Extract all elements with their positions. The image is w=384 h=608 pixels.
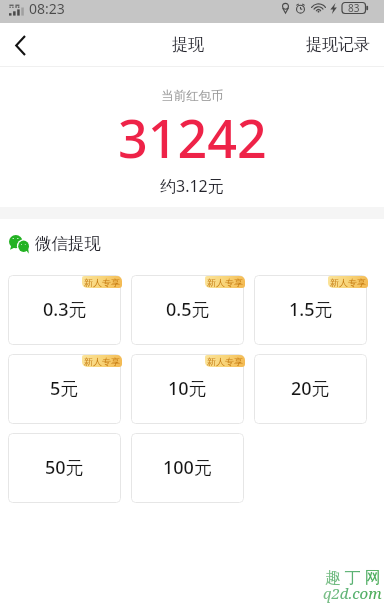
- staticText: 趣丁网: [325, 568, 384, 588]
- button[interactable]: 1.5元: [254, 275, 367, 345]
- staticText: 100元: [163, 455, 212, 480]
- button[interactable]: 0.3元: [8, 275, 121, 345]
- staticText: 31242: [118, 102, 267, 173]
- button[interactable]: Back: [0, 23, 40, 67]
- staticText: 新人专享: [207, 277, 243, 288]
- staticText: 1.5元: [289, 297, 333, 322]
- staticText: 微信提现: [35, 233, 101, 254]
- button[interactable]: 5元: [8, 354, 121, 424]
- button[interactable]: 0.5元: [131, 275, 244, 345]
- staticText: 新人专享: [207, 356, 243, 367]
- button[interactable]: 20元: [254, 354, 367, 424]
- staticText: 新人专享: [84, 356, 120, 367]
- staticText: 新人专享: [84, 277, 120, 288]
- staticText: 提现: [172, 35, 204, 55]
- staticText: 约3.12元: [160, 175, 224, 197]
- staticText: q2d.com: [323, 583, 382, 603]
- staticText: 50元: [45, 455, 84, 480]
- staticText: 10元: [168, 376, 207, 401]
- staticText: 当前红包币: [161, 88, 224, 104]
- staticText: 新人专享: [330, 277, 366, 288]
- button[interactable]: 100元: [131, 433, 244, 503]
- button[interactable]: 10元: [131, 354, 244, 424]
- staticText: 83: [348, 1, 360, 15]
- button[interactable]: 50元: [8, 433, 121, 503]
- staticText: 5元: [50, 376, 79, 401]
- staticText: 提现记录: [306, 35, 370, 55]
- button[interactable]: 提现记录: [292, 27, 384, 63]
- staticText: 20元: [291, 376, 330, 401]
- staticText: 0.5元: [166, 297, 210, 322]
- staticText: 08:23: [29, 0, 65, 18]
- staticText: 0.3元: [43, 297, 87, 322]
